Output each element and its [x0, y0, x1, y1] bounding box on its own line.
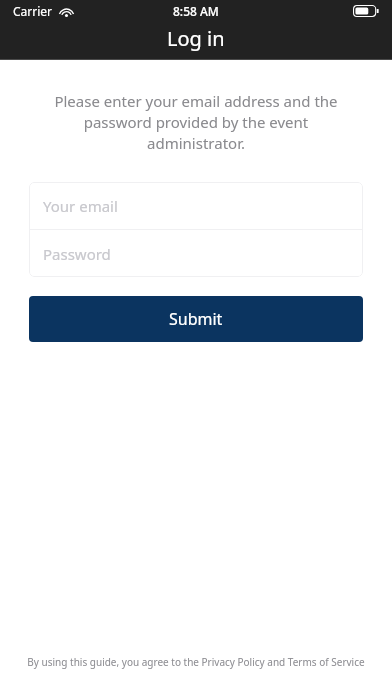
button[interactable]: By using this guide, you agree to the Pr…: [14, 655, 378, 669]
staticText: Log in: [167, 25, 225, 52]
staticText: 8:58 AM: [173, 3, 219, 19]
other: Battery: [353, 5, 380, 17]
staticText: Submit: [169, 308, 223, 330]
staticText: Please enter your email address and the …: [33, 91, 359, 154]
button[interactable]: Submit: [29, 296, 363, 342]
staticText: Password: [43, 244, 111, 264]
other: Wi-Fi signal: [59, 6, 74, 17]
button[interactable]: Your email: [29, 182, 363, 229]
staticText: Carrier: [13, 3, 53, 19]
button[interactable]: Password: [29, 230, 363, 277]
staticText: Your email: [43, 196, 118, 216]
